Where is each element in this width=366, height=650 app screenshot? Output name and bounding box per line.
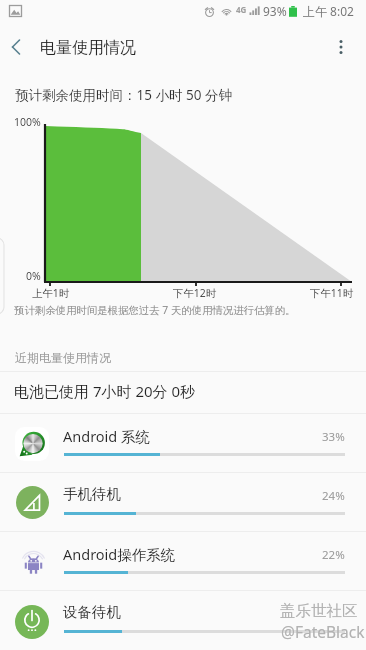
staticText: Android操作系统 — [63, 544, 176, 564]
staticText: 22% — [322, 547, 345, 563]
staticText: 预计剩余使用时间：15 小时 50 分钟 — [15, 86, 232, 104]
staticText: 下午12时 — [173, 286, 217, 300]
staticText: 盖乐世社区 — [280, 601, 358, 621]
staticText: 上午1时 — [32, 286, 70, 300]
staticText: 手机待机 — [63, 485, 121, 503]
staticText: 下午11时 — [310, 286, 354, 300]
button[interactable]: Android操作系统 — [0, 532, 366, 591]
staticText: 电池已使用 7小时 20分 0秒 — [14, 381, 196, 401]
staticText: 33% — [322, 429, 345, 445]
staticText: 0% — [26, 269, 41, 283]
staticText: @FateBlack — [281, 621, 365, 642]
staticText: 100% — [14, 115, 41, 129]
staticText: 预计剩余使用时间是根据您过去 7 天的使用情况进行估算的。 — [14, 303, 296, 317]
button[interactable]: More options — [330, 24, 352, 69]
staticText: 设备待机 — [63, 603, 121, 621]
staticText: 上午 8:02 — [303, 3, 354, 19]
button[interactable]: Android 系统 — [0, 414, 366, 473]
staticText: 24% — [322, 488, 345, 504]
button[interactable]: 设备待机 — [0, 591, 366, 650]
staticText: 4G — [236, 4, 247, 15]
staticText: 电量使用情况 — [40, 38, 136, 58]
staticText: 近期电量使用情况 — [15, 350, 111, 365]
staticText: 93% — [263, 3, 287, 19]
staticText: Android 系统 — [63, 426, 151, 446]
button[interactable]: 手机待机 — [0, 473, 366, 532]
button[interactable]: Back — [2, 24, 38, 69]
